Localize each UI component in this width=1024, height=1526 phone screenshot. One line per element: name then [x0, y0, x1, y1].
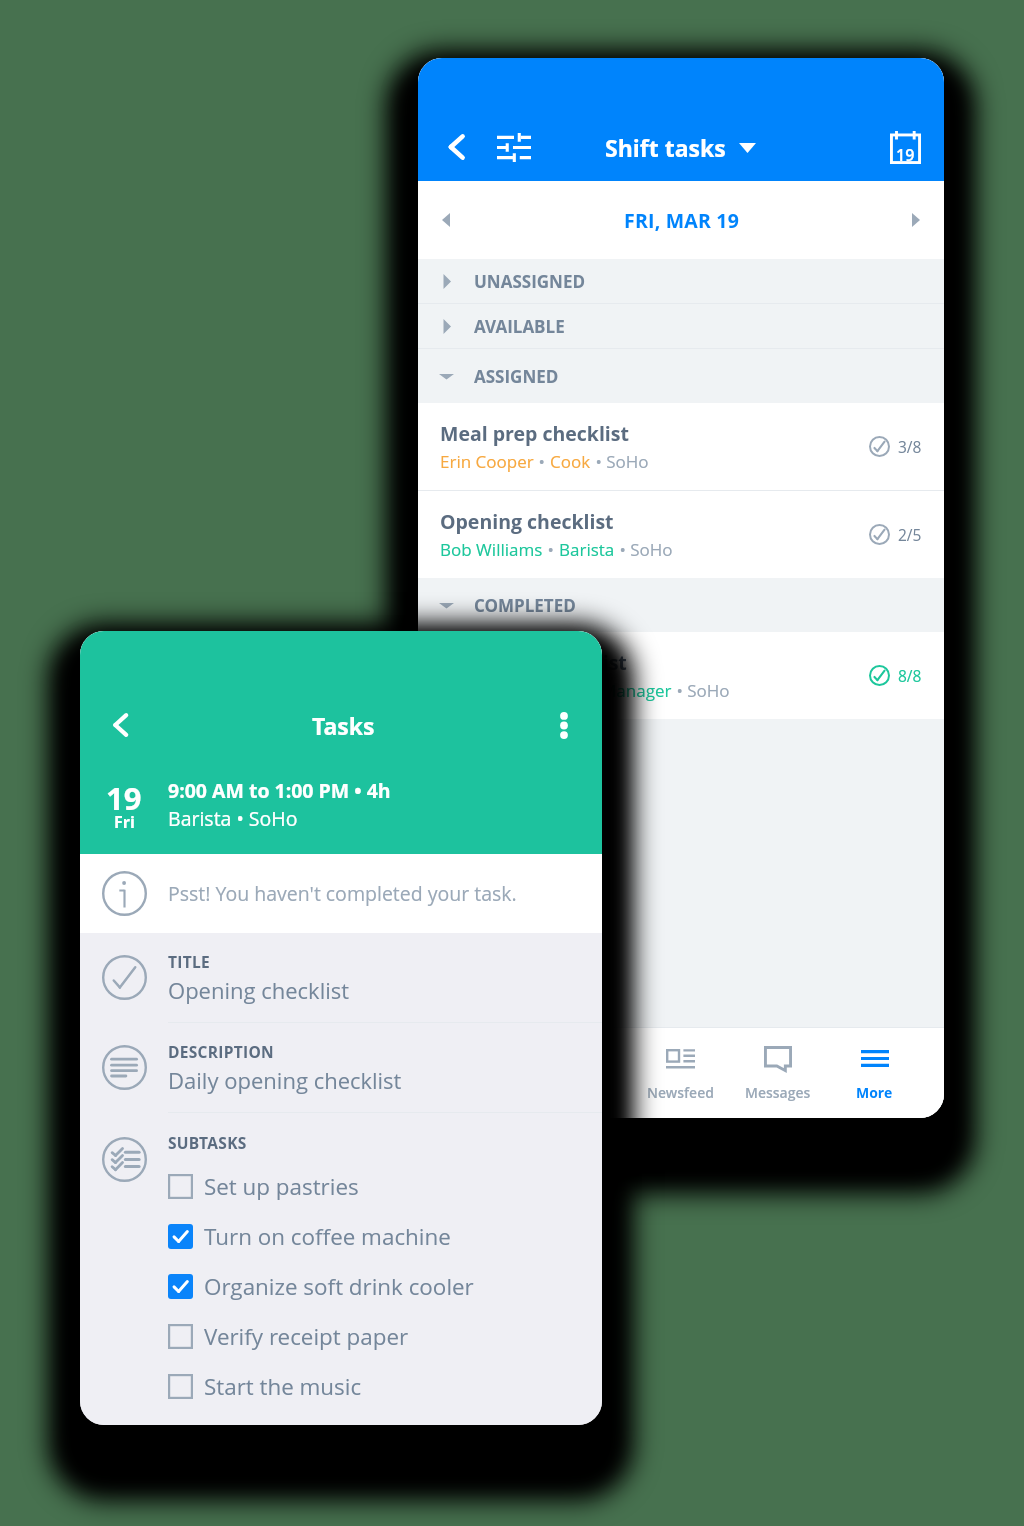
staticText: TITLE	[168, 951, 211, 972]
button[interactable]: Set up pastries	[168, 1161, 602, 1211]
button[interactable]: TITLE	[80, 933, 602, 1022]
button[interactable]: Back	[80, 693, 161, 757]
staticText: Psst! You haven't completed your task.	[168, 880, 517, 907]
staticText: Bob Williams	[440, 538, 543, 561]
staticText: Newsfeed	[647, 1083, 714, 1102]
staticText: •	[543, 538, 559, 561]
staticText: Fri	[114, 811, 135, 833]
button[interactable]: Newsfeed	[632, 1028, 729, 1118]
button[interactable]: AVAILABLE	[418, 304, 944, 348]
staticText: AVAILABLE	[474, 315, 565, 338]
staticText: UNASSIGNED	[474, 270, 585, 293]
staticText: Tasks	[312, 710, 375, 741]
staticText: Barista • SoHo	[168, 805, 298, 832]
staticText: DESCRIPTION	[168, 1041, 275, 1062]
staticText: Cook	[550, 450, 591, 473]
staticText: Barista	[559, 538, 615, 561]
button[interactable]: Messages	[729, 1028, 826, 1118]
button[interactable]: Inventory checklist	[418, 632, 944, 719]
button[interactable]: Calendar	[866, 116, 944, 178]
staticText: 9:00 AM to 1:00 PM • 4h	[168, 777, 391, 804]
staticText: FRI, MAR 19	[624, 207, 739, 234]
button[interactable]: More options	[525, 693, 602, 757]
staticText: • SoHo	[672, 679, 730, 702]
button[interactable]: Psst! You haven't completed your task.	[80, 854, 602, 933]
button[interactable]: UNASSIGNED	[418, 259, 944, 303]
staticText: 3/8	[898, 436, 922, 457]
staticText: Shift tasks	[605, 132, 726, 163]
button[interactable]: Verify receipt paper	[168, 1311, 602, 1361]
staticText: 8/8	[898, 665, 922, 686]
button[interactable]: Start the music	[168, 1361, 602, 1411]
staticText: Inventory checklist	[440, 649, 627, 676]
button[interactable]: Next day	[888, 181, 944, 259]
staticText: 19	[896, 144, 915, 166]
button[interactable]: Turn on coffee machine	[168, 1211, 602, 1261]
staticText: Turn on coffee machine	[204, 1221, 451, 1252]
staticText: Verify receipt paper	[204, 1321, 409, 1352]
staticText: ASSIGNED	[474, 365, 559, 388]
staticText: • SoHo	[591, 450, 649, 473]
staticText: Opening checklist	[440, 508, 614, 535]
button[interactable]: DESCRIPTION	[80, 1023, 602, 1112]
staticText: Set up pastries	[204, 1171, 359, 1202]
button[interactable]: Organize soft drink cooler	[168, 1261, 602, 1311]
staticText: Opening checklist	[168, 975, 350, 1005]
staticText: 2/5	[898, 524, 922, 545]
staticText: 19	[106, 777, 142, 819]
staticText: Manager	[601, 679, 672, 702]
button[interactable]: More	[826, 1028, 923, 1118]
button[interactable]: ASSIGNED	[418, 349, 944, 403]
button[interactable]: Team	[535, 1028, 632, 1118]
staticText: SUBTASKS	[168, 1132, 247, 1153]
staticText: Messages	[745, 1083, 811, 1102]
staticText: Start the music	[204, 1371, 362, 1402]
staticText: More	[856, 1083, 893, 1102]
staticText: Daily opening checklist	[168, 1065, 402, 1095]
staticText: COMPLETED	[474, 594, 576, 617]
button[interactable]: Previous day	[418, 181, 474, 259]
staticText: Erin Cooper	[440, 450, 534, 473]
staticText: • SoHo	[615, 538, 673, 561]
staticText: Meal prep checklist	[440, 420, 629, 447]
button[interactable]: Shift tasks	[599, 122, 762, 173]
button[interactable]: Filter	[495, 116, 533, 178]
button[interactable]: Opening checklist	[418, 491, 944, 578]
staticText: •	[534, 450, 550, 473]
button[interactable]: Back	[418, 116, 495, 178]
button[interactable]: Meal prep checklist	[418, 403, 944, 490]
button[interactable]: COMPLETED	[418, 578, 944, 632]
staticText: Organize soft drink cooler	[204, 1271, 474, 1302]
